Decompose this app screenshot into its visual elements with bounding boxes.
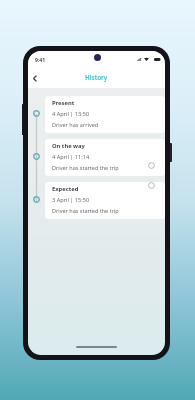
button[interactable]: Back — [28, 70, 43, 86]
staticText: Driver has arrived — [52, 121, 99, 128]
staticText: History — [85, 73, 108, 82]
staticText: 4 April | 11:14 — [52, 153, 90, 161]
staticText: Present — [52, 99, 75, 107]
button[interactable]: Select — [148, 182, 155, 189]
button[interactable]: Select — [148, 162, 155, 169]
staticText: On the way — [52, 142, 85, 150]
button[interactable]: Expected — [28, 182, 165, 219]
staticText: 9:41 — [35, 57, 46, 64]
staticText: Driver has started the trip — [52, 164, 119, 171]
staticText: 4 April | 13:50 — [52, 110, 90, 118]
button[interactable]: Present — [28, 96, 165, 133]
staticText: Expected — [52, 185, 79, 193]
button[interactable]: On the way — [28, 139, 165, 176]
staticText: Driver has started the trip — [52, 207, 119, 214]
staticText: 3 April | 15:50 — [52, 196, 90, 204]
